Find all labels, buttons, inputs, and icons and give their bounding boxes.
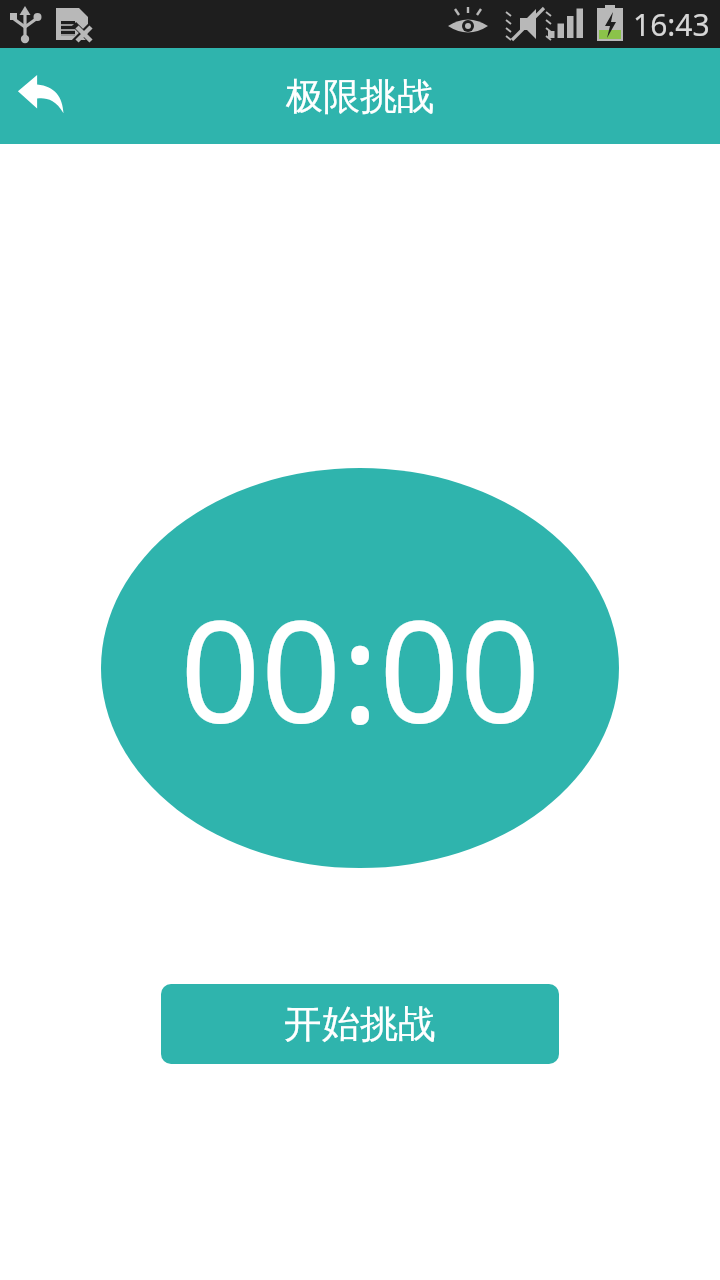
staticText: 开始挑战 — [284, 1000, 436, 1048]
button[interactable]: Back — [0, 56, 80, 136]
staticText: 16:43 — [633, 4, 710, 45]
button[interactable]: 开始挑战 — [161, 984, 559, 1064]
button[interactable]: 00:00 — [101, 468, 619, 868]
staticText: 00:00 — [180, 572, 541, 764]
staticText: 极限挑战 — [286, 73, 434, 120]
